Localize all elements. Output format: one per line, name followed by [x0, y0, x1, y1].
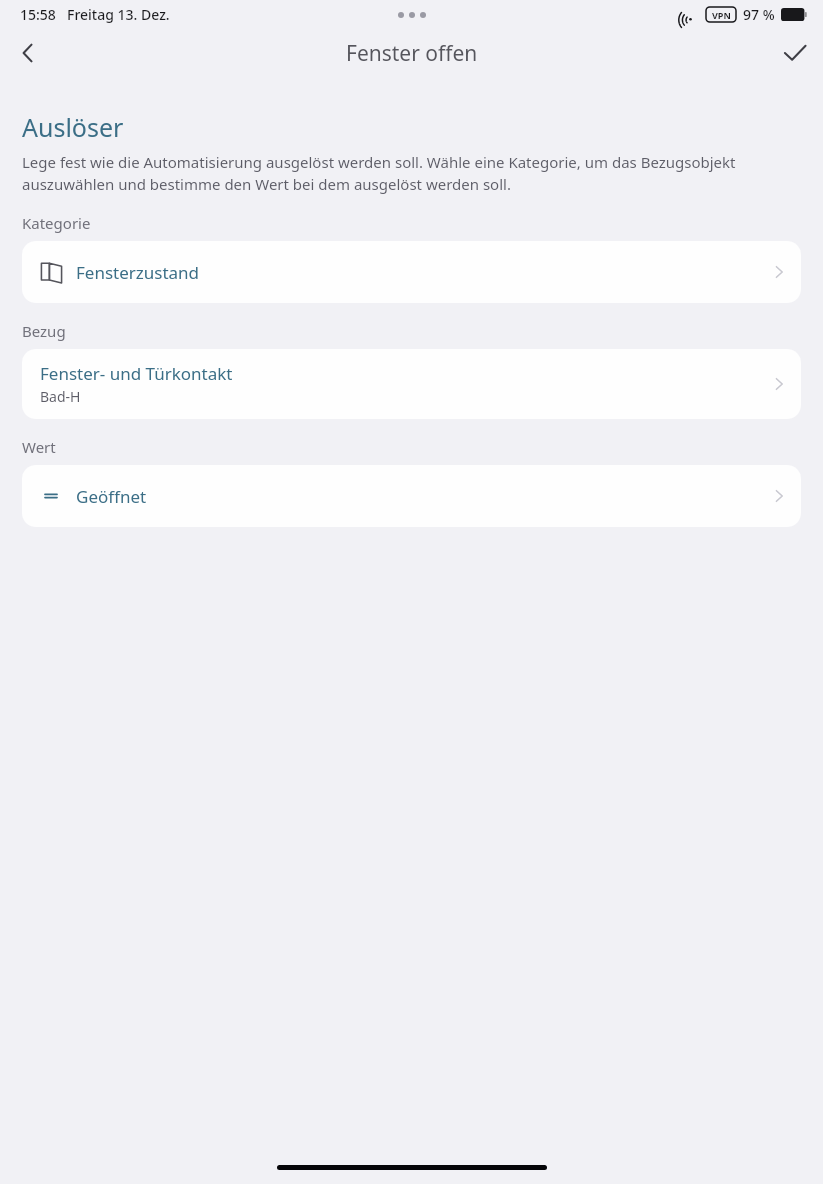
- staticText: Wert: [22, 437, 56, 457]
- button[interactable]: Fenster- und Türkontakt: [22, 349, 801, 419]
- staticText: Bad-H: [40, 387, 81, 406]
- button[interactable]: Bestätigen: [767, 29, 823, 77]
- staticText: Auslöser: [22, 110, 124, 144]
- staticText: Kategorie: [22, 213, 91, 233]
- staticText: Bezug: [22, 321, 66, 341]
- staticText: Fensterzustand: [76, 261, 200, 284]
- staticText: Geöffnet: [76, 485, 147, 508]
- button[interactable]: Geöffnet: [22, 465, 801, 527]
- staticText: Freitag 13. Dez.: [67, 5, 170, 24]
- button[interactable]: Zurück: [0, 29, 56, 77]
- button[interactable]: Fensterzustand: [22, 241, 801, 303]
- staticText: 97 %: [743, 5, 775, 24]
- staticText: Fenster offen: [346, 39, 478, 68]
- staticText: Fenster- und Türkontakt: [40, 362, 233, 385]
- staticText: 15:58: [20, 5, 56, 24]
- staticText: VPN: [712, 9, 731, 21]
- staticText: Lege fest wie die Automatisierung ausgel…: [22, 152, 801, 195]
